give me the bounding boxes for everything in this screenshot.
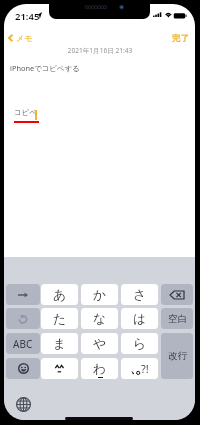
button[interactable]: ↺ — [6, 308, 40, 329]
button[interactable]: ABC — [6, 333, 40, 354]
button[interactable]: 改行 — [161, 333, 193, 379]
button[interactable]: わ — [81, 358, 118, 379]
staticText: iPhoneでコピペする — [10, 63, 80, 73]
staticText: コピペ — [14, 108, 37, 117]
staticText: 2021年1月16日 21:43 — [0, 46, 200, 55]
button[interactable]: Switch keyboard — [14, 395, 32, 413]
button[interactable]: あ — [41, 284, 78, 305]
staticText: ABC — [13, 337, 33, 351]
button[interactable]: か — [81, 284, 118, 305]
staticText: ま — [53, 336, 67, 352]
button[interactable]: メモ — [5, 31, 36, 45]
staticText: メモ — [16, 33, 33, 43]
staticText: か — [93, 287, 107, 303]
staticText: ?! — [141, 361, 149, 376]
button[interactable]: ま — [41, 333, 78, 354]
button[interactable]: た — [41, 308, 78, 329]
button[interactable]: ☺ — [6, 358, 40, 379]
button[interactable]: さ — [121, 284, 158, 305]
button[interactable]: ⌫ — [161, 284, 193, 305]
button[interactable]: ?! — [121, 358, 158, 379]
staticText: わ — [93, 361, 107, 377]
staticText: ら — [133, 336, 147, 352]
staticText: な — [93, 311, 107, 327]
staticText: 改行 — [168, 350, 187, 362]
button[interactable]: → — [6, 284, 40, 305]
button[interactable] — [41, 358, 78, 379]
button[interactable]: や — [81, 333, 118, 354]
staticText: あ — [53, 287, 67, 303]
staticText: 21:45 — [15, 10, 40, 23]
staticText: や — [93, 336, 107, 352]
staticText: た — [53, 311, 67, 327]
button[interactable]: な — [81, 308, 118, 329]
button[interactable]: 空白 — [161, 308, 193, 329]
staticText: さ — [133, 287, 147, 303]
button[interactable]: ら — [121, 333, 158, 354]
staticText: 空白 — [168, 313, 187, 325]
staticText: 完了 — [172, 33, 189, 44]
button[interactable]: 完了 — [168, 31, 193, 46]
staticText: は — [133, 311, 147, 327]
button[interactable]: は — [121, 308, 158, 329]
